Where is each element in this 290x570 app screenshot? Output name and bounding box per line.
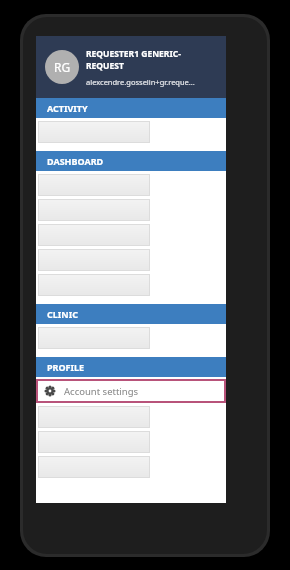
staticText: RG [54,59,71,75]
staticText: Account settings [64,385,139,398]
other: Account settings [45,386,55,396]
button[interactable] [38,431,150,453]
staticText: ACTIVITY [47,102,88,114]
button[interactable] [38,327,150,349]
button[interactable]: DASHBOARD [36,151,226,171]
staticText: PROFILE [47,361,85,373]
button[interactable]: ACTIVITY [36,98,226,118]
button[interactable] [38,249,150,271]
button[interactable] [38,121,150,143]
staticText: CLINIC [47,308,78,320]
staticText: REQUEST [86,60,124,72]
button[interactable] [38,224,150,246]
staticText: DASHBOARD [47,155,104,167]
button[interactable]: PROFILE [36,357,226,377]
button[interactable] [38,406,150,428]
button[interactable] [38,274,150,296]
button[interactable]: CLINIC [36,304,226,324]
button[interactable] [38,456,150,478]
button[interactable] [38,199,150,221]
button[interactable]: RG [36,36,226,98]
button[interactable] [38,174,150,196]
staticText: alexcendre.gosselin+gr.reque... [86,77,195,87]
button[interactable]: Account settings [36,379,226,403]
staticText: REQUESTER1 GENERIC- [86,48,181,60]
